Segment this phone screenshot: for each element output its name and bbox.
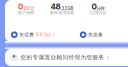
staticText: .33GB — [60, 6, 73, 11]
staticText: 0 — [18, 2, 23, 11]
button[interactable]: 充流量 — [80, 31, 128, 38]
staticText: 分钟 — [96, 6, 104, 11]
staticText: 48 — [50, 2, 60, 11]
staticText: 0 — [91, 2, 96, 11]
staticText: 您的专属置业顾问经理为您服务 — [20, 54, 104, 61]
button[interactable]: 您的专属置业顾问经理为您服务 — [5, 49, 128, 66]
staticText: .00元 — [23, 6, 34, 11]
staticText: 充话费 — [19, 32, 34, 37]
staticText: 已用语音 — [90, 10, 106, 15]
staticText: 充流量 — [88, 32, 103, 37]
staticText: 剩余通用流量 — [50, 10, 74, 15]
staticText: 9.9元起 — [36, 32, 51, 37]
button[interactable]: 充话费 — [11, 31, 55, 38]
staticText: 账户余额 — [18, 10, 34, 15]
